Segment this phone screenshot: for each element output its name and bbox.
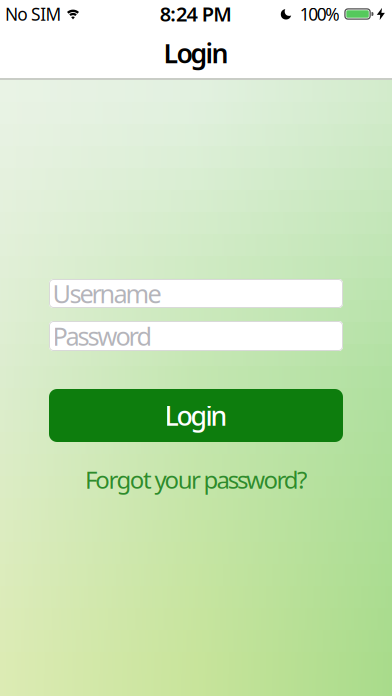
textField[interactable]: Password [49, 321, 343, 351]
button[interactable]: Login [49, 389, 343, 442]
staticText: No SIM [5, 2, 61, 25]
button[interactable]: Forgot your password? [85, 464, 307, 495]
staticText: 100% [300, 2, 339, 25]
staticText: Forgot your password? [85, 464, 307, 495]
staticText: 8:24 PM [160, 0, 232, 27]
staticText: Login [163, 35, 228, 71]
staticText: Login [164, 398, 227, 433]
staticText: Username [52, 277, 161, 310]
staticText: Password [52, 319, 152, 353]
textField[interactable]: Username [49, 278, 343, 308]
